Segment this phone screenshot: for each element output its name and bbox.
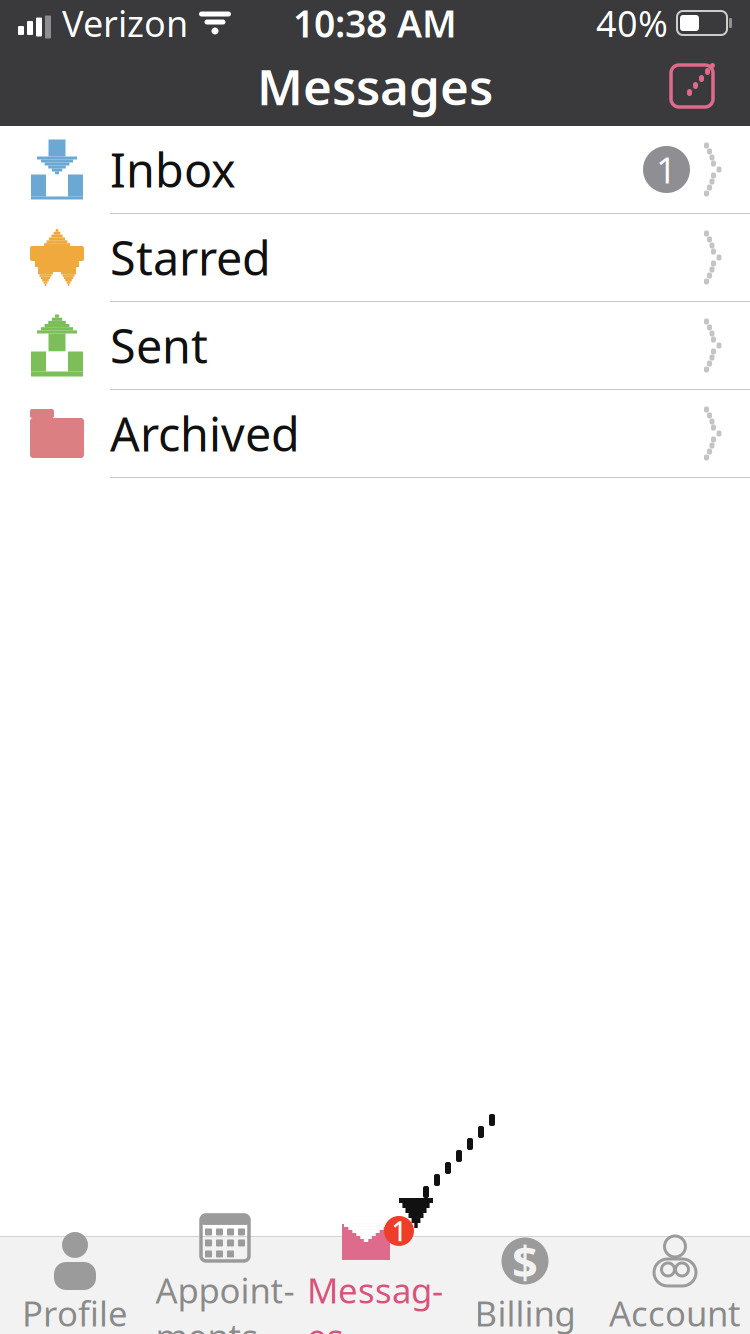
staticText: $ [512, 1231, 538, 1291]
staticText: 1 [391, 1213, 406, 1249]
button[interactable]: Archived [0, 390, 750, 478]
button[interactable]: Compose [656, 50, 728, 122]
staticText: Account [609, 1290, 741, 1334]
button[interactable]: Account [600, 1237, 750, 1334]
staticText: Messages [257, 53, 493, 119]
staticText: 10:38 AM [293, 0, 457, 48]
staticText: Verizon [62, 0, 188, 47]
staticText: Starred [110, 226, 271, 288]
button[interactable]: Inbox [0, 126, 750, 214]
staticText: Appointments [155, 1267, 294, 1334]
button[interactable]: Appointments [150, 1237, 300, 1334]
button[interactable]: Profile [0, 1237, 150, 1334]
staticText: Profile [22, 1290, 128, 1334]
staticText: 1 [656, 146, 677, 193]
button[interactable]: Sent [0, 302, 750, 390]
staticText: 40% [596, 0, 668, 47]
button[interactable]: Starred [0, 214, 750, 302]
staticText: Archived [110, 402, 300, 464]
staticText: Billing [474, 1290, 575, 1334]
staticText: Inbox [110, 138, 236, 200]
staticText: Messages [307, 1267, 443, 1334]
staticText: Sent [110, 314, 208, 376]
button[interactable]: $ [450, 1237, 600, 1334]
button[interactable]: 1 [300, 1237, 450, 1334]
